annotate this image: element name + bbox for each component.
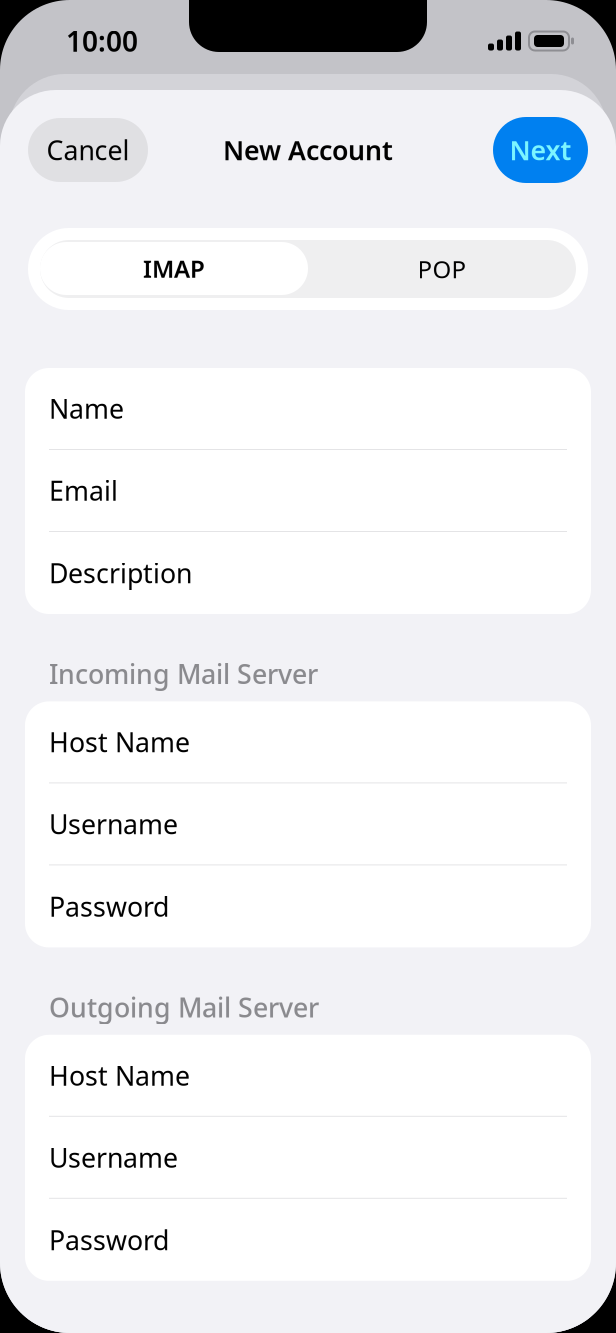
button[interactable]: Password	[25, 865, 591, 947]
staticText: Password	[49, 889, 169, 924]
button[interactable]: IMAP	[40, 240, 308, 298]
button[interactable]: Next	[493, 117, 588, 183]
button[interactable]: Password	[25, 1199, 591, 1281]
staticText: IMAP	[143, 253, 205, 284]
staticText: Incoming Mail Server	[49, 656, 318, 691]
staticText: Host Name	[49, 724, 190, 760]
button[interactable]: Description	[25, 532, 591, 614]
button[interactable]: Host Name	[25, 1035, 591, 1117]
staticText: Name	[49, 391, 124, 426]
button[interactable]: Host Name	[25, 701, 591, 783]
staticText: Outgoing Mail Server	[49, 989, 319, 1025]
button[interactable]: Username	[25, 1117, 591, 1199]
button[interactable]: POP	[308, 240, 576, 298]
staticText: Host Name	[49, 1058, 190, 1093]
button[interactable]: Name	[25, 368, 591, 450]
staticText: Email	[49, 473, 118, 508]
button[interactable]: Email	[25, 450, 591, 532]
staticText: Cancel	[46, 132, 129, 168]
staticText: Next	[509, 132, 571, 168]
staticText: New Account	[223, 132, 393, 168]
button[interactable]: Username	[25, 783, 591, 865]
staticText: Password	[49, 1222, 169, 1257]
staticText: Username	[49, 806, 178, 842]
staticText: Description	[49, 555, 192, 591]
staticText: POP	[417, 253, 466, 285]
button[interactable]: Cancel	[28, 118, 148, 182]
staticText: Username	[49, 1140, 178, 1175]
staticText: 10:00	[66, 22, 138, 60]
